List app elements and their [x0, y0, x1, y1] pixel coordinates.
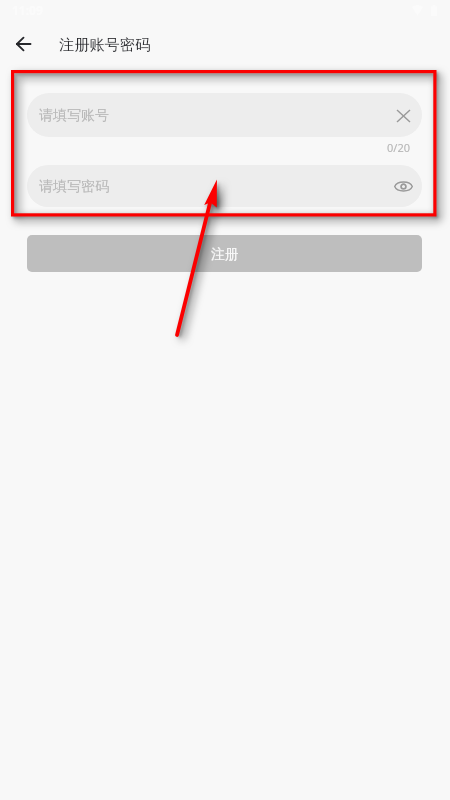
button[interactable]: 请填写密码	[27, 165, 422, 207]
button[interactable]: 注册	[27, 235, 422, 272]
staticText: 请填写账号	[39, 107, 393, 125]
button[interactable]: Back	[6, 26, 41, 61]
button[interactable]: 请填写账号	[27, 93, 422, 137]
button[interactable]: Clear	[393, 105, 413, 125]
staticText: 注册	[211, 246, 239, 264]
staticText: 注册账号密码	[59, 35, 151, 54]
staticText: 0/20	[387, 140, 410, 155]
staticText: 请填写密码	[39, 178, 392, 196]
button[interactable]: Show password	[392, 175, 414, 197]
